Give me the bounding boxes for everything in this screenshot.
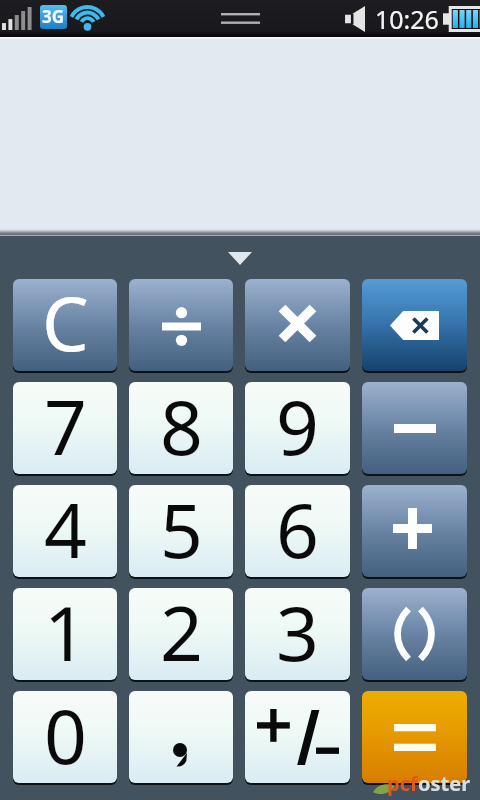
- button[interactable]: C: [13, 279, 117, 371]
- button[interactable]: Multiply: [245, 279, 350, 371]
- button[interactable]: Minus: [362, 382, 467, 474]
- button[interactable]: 4: [13, 485, 117, 577]
- button[interactable]: Equals: [362, 691, 467, 783]
- staticText: 2: [160, 588, 203, 673]
- button[interactable]: Backspace: [362, 279, 467, 371]
- button[interactable]: 1: [13, 588, 117, 680]
- button[interactable]: 0: [13, 691, 117, 783]
- staticText: 7: [44, 382, 87, 467]
- button[interactable]: 6: [245, 485, 350, 577]
- button[interactable]: Plus minus: [245, 691, 350, 783]
- button[interactable]: Plus: [362, 485, 467, 577]
- other: Parentheses: [393, 609, 436, 659]
- button[interactable]: 7: [13, 382, 117, 474]
- button[interactable]: 5: [129, 485, 233, 577]
- staticText: pcf: [387, 770, 418, 797]
- button[interactable]: Divide: [129, 279, 233, 371]
- button[interactable]: 8: [129, 382, 233, 474]
- staticText: 6: [276, 485, 319, 570]
- button[interactable]: 9: [245, 382, 350, 474]
- staticText: 0: [44, 691, 87, 776]
- staticText: 1: [44, 588, 87, 673]
- other: Backspace: [390, 311, 439, 340]
- other: Equals: [394, 724, 436, 751]
- other: Multiply: [282, 308, 313, 339]
- other: Divide: [162, 307, 201, 346]
- staticText: 3: [276, 588, 319, 673]
- staticText: 4: [44, 485, 87, 570]
- staticText: 10:26: [375, 2, 439, 36]
- staticText: 9: [276, 382, 319, 467]
- other: Decimal comma: [173, 743, 187, 767]
- button[interactable]: Parentheses: [362, 588, 467, 680]
- button[interactable]: 2: [129, 588, 233, 680]
- button[interactable]: Decimal comma: [129, 691, 233, 783]
- other: Plus: [393, 508, 432, 549]
- staticText: 5: [160, 485, 203, 570]
- button[interactable]: 3: [245, 588, 350, 680]
- staticText: C: [42, 279, 89, 364]
- staticText: oster: [418, 770, 471, 797]
- staticText: 8: [160, 382, 203, 467]
- other: Plus minus: [257, 710, 339, 765]
- staticText: 3G: [42, 5, 65, 28]
